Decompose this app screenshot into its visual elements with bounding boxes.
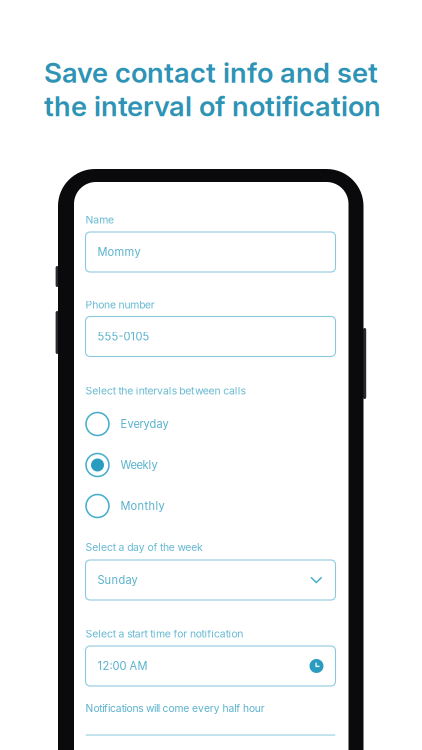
staticText: Phone number [85,298,155,311]
staticText: Everyday [120,417,168,431]
staticText: Monthly [120,499,164,513]
staticText: 555-0105 [97,330,149,343]
button[interactable]: Everyday [85,410,335,438]
button[interactable]: Monthly [85,492,335,520]
button[interactable]: 555-0105 [85,316,335,356]
staticText: Select a day of the week [85,541,203,554]
staticText: Select the intervals between calls [85,384,245,397]
button[interactable]: Sunday [85,560,335,600]
staticText: Weekly [120,458,157,472]
staticText: 12:00 AM [97,659,147,673]
staticText: Name [85,213,114,226]
staticText: Sunday [97,573,137,587]
staticText: Mommy [97,245,140,259]
staticText: Select a start time for notification [85,627,243,640]
button[interactable]: Mommy [85,232,335,272]
staticText: Notifications will come every half hour [85,702,265,714]
button[interactable]: 12:00 AM [85,646,335,686]
staticText: Save contact info and set [44,56,378,90]
staticText: the interval of notification [44,89,381,123]
button[interactable]: Weekly [85,451,335,479]
